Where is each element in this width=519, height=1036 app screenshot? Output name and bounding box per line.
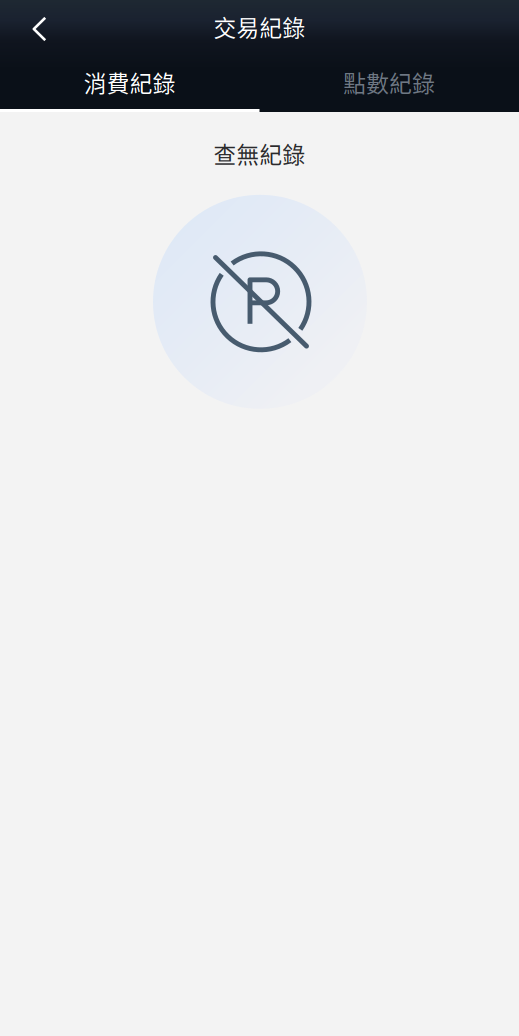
button[interactable]: Back (0, 0, 65, 56)
button[interactable]: 點數紀錄 (259, 56, 519, 112)
staticText: 查無紀錄 (213, 137, 305, 170)
button[interactable]: 消費紀錄 (0, 56, 259, 112)
staticText: 點數紀錄 (343, 66, 435, 98)
staticText: 消費紀錄 (84, 66, 176, 98)
staticText: 交易紀錄 (213, 10, 305, 43)
